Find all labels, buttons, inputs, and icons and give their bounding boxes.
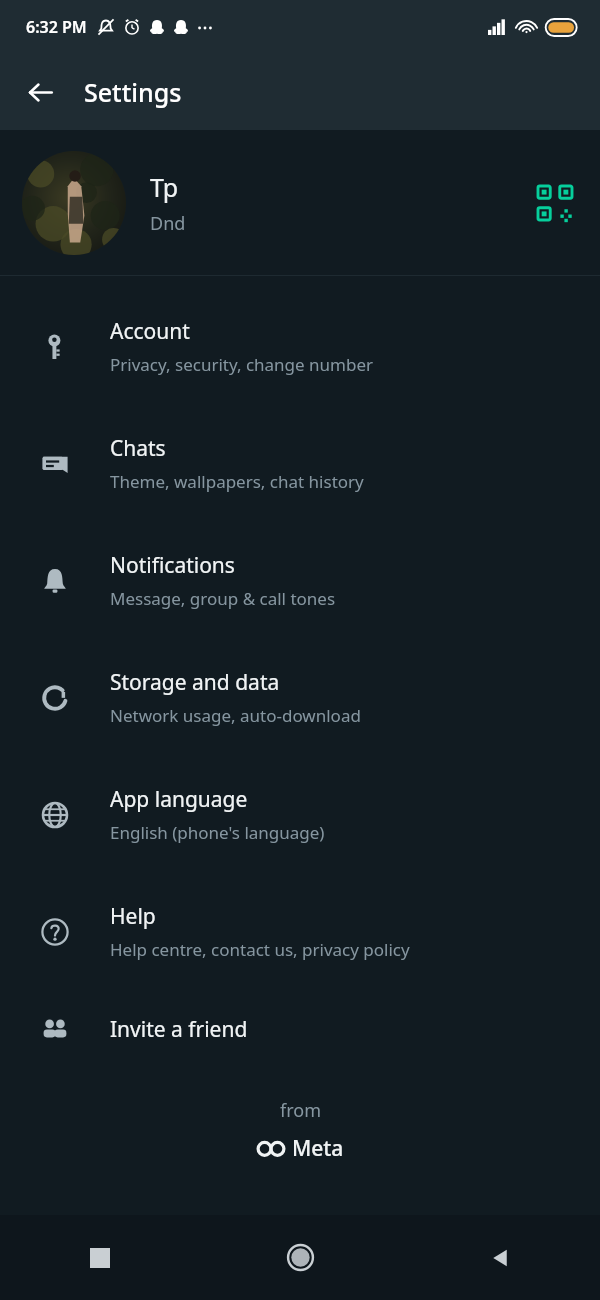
staticText: Chats bbox=[110, 434, 166, 463]
button[interactable]: Recent apps bbox=[0, 1215, 200, 1300]
staticText: from bbox=[280, 1098, 321, 1123]
staticText: Privacy, security, change number bbox=[110, 353, 374, 376]
button[interactable]: Storage and data bbox=[0, 639, 600, 756]
staticText: Account bbox=[110, 317, 190, 346]
button[interactable]: App language bbox=[0, 756, 600, 873]
staticText: Invite a friend bbox=[110, 1015, 248, 1044]
staticText: Dnd bbox=[150, 211, 186, 236]
staticText: 6:32 PM bbox=[26, 16, 87, 38]
button[interactable]: Account bbox=[0, 288, 600, 405]
button[interactable]: Chats bbox=[0, 405, 600, 522]
staticText: Message, group & call tones bbox=[110, 587, 336, 610]
staticText: App language bbox=[110, 785, 248, 814]
button[interactable]: QR code bbox=[532, 180, 578, 226]
staticText: Settings bbox=[84, 75, 182, 109]
button[interactable]: Help bbox=[0, 873, 600, 990]
staticText: Meta bbox=[292, 1134, 344, 1163]
button[interactable]: Back bbox=[14, 66, 66, 118]
staticText: Network usage, auto-download bbox=[110, 704, 361, 727]
button[interactable]: Back bbox=[400, 1215, 600, 1300]
staticText: Tp bbox=[150, 170, 179, 204]
button[interactable]: Invite a friend bbox=[0, 990, 600, 1068]
staticText: Theme, wallpapers, chat history bbox=[110, 470, 364, 493]
button[interactable]: Tp bbox=[0, 130, 600, 275]
staticText: English (phone's language) bbox=[110, 821, 325, 844]
staticText: Storage and data bbox=[110, 668, 280, 697]
button[interactable]: Notifications bbox=[0, 522, 600, 639]
staticText: Help bbox=[110, 902, 156, 931]
button[interactable]: Home bbox=[200, 1215, 400, 1300]
staticText: Help centre, contact us, privacy policy bbox=[110, 938, 410, 961]
staticText: Notifications bbox=[110, 551, 235, 580]
